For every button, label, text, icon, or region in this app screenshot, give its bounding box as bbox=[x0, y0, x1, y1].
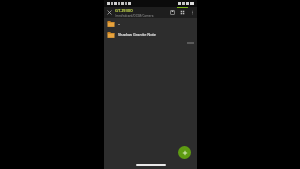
button[interactable]: Shadow Granite Note bbox=[104, 29, 197, 40]
button[interactable]: Grid view bbox=[177, 7, 187, 18]
button[interactable]: GT-I9300 bbox=[115, 7, 167, 18]
button[interactable]: Close bbox=[104, 7, 115, 18]
staticText: .. bbox=[118, 21, 121, 26]
button[interactable]: .. bbox=[104, 18, 197, 29]
button[interactable]: Save bbox=[167, 7, 177, 18]
button[interactable]: Add bbox=[178, 146, 191, 159]
staticText: GT-I9300 bbox=[115, 8, 133, 14]
staticText: Shadow Granite Note bbox=[118, 32, 156, 37]
staticText: /mnt/sdcard/DCIM/Camera bbox=[115, 14, 154, 18]
button[interactable]: More options bbox=[187, 7, 197, 18]
